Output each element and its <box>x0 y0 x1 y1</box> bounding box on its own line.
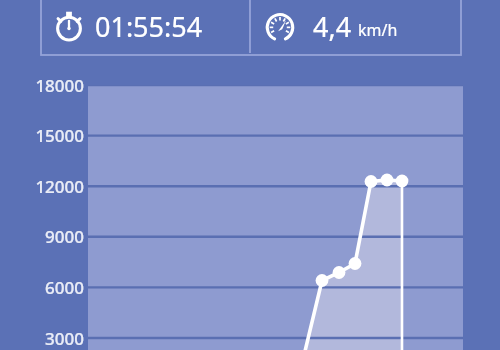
staticText: 3000 <box>0 327 84 350</box>
button[interactable]: Elapsed time 01:55:54 <box>41 1 250 51</box>
staticText: 18000 <box>0 74 84 97</box>
staticText: km/h <box>358 19 398 41</box>
staticText: 6000 <box>0 276 84 299</box>
staticText: 12000 <box>0 175 84 198</box>
staticText: 01:55:54 <box>95 8 203 45</box>
staticText: 9000 <box>0 225 84 248</box>
staticText: 4,4 <box>313 8 352 45</box>
staticText: 15000 <box>0 124 84 147</box>
button[interactable]: Speed 4,4 kilometres per hour <box>250 1 461 51</box>
